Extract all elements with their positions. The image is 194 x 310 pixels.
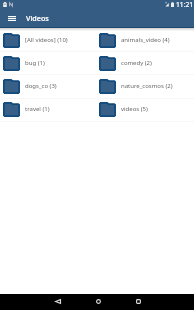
staticText: [All videos] (10)	[25, 36, 68, 44]
staticText: 11:21	[176, 0, 194, 9]
button[interactable]: videos (5)	[96, 99, 192, 122]
staticText: videos (5)	[121, 105, 148, 113]
button[interactable]: Recent apps	[118, 293, 158, 309]
button[interactable]: comedy (2)	[96, 53, 192, 76]
staticText: animals_video (4)	[121, 36, 170, 44]
button[interactable]: [All videos] (10)	[0, 30, 96, 53]
button[interactable]: animals_video (4)	[96, 30, 192, 53]
staticText: travel (1)	[25, 105, 50, 113]
button[interactable]: bug (1)	[0, 53, 96, 76]
staticText: nature_cosmos (2)	[121, 82, 173, 90]
button[interactable]: nature_cosmos (2)	[96, 76, 192, 99]
staticText: dogs_co (3)	[25, 82, 57, 90]
button[interactable]: Open navigation drawer	[3, 9, 20, 27]
button[interactable]: dogs_co (3)	[0, 76, 96, 99]
button[interactable]: Home	[78, 293, 118, 309]
staticText: Videos	[26, 13, 49, 23]
staticText: bug (1)	[25, 59, 45, 67]
button[interactable]: Back	[38, 293, 78, 309]
button[interactable]: travel (1)	[0, 99, 96, 122]
staticText: comedy (2)	[121, 59, 152, 67]
